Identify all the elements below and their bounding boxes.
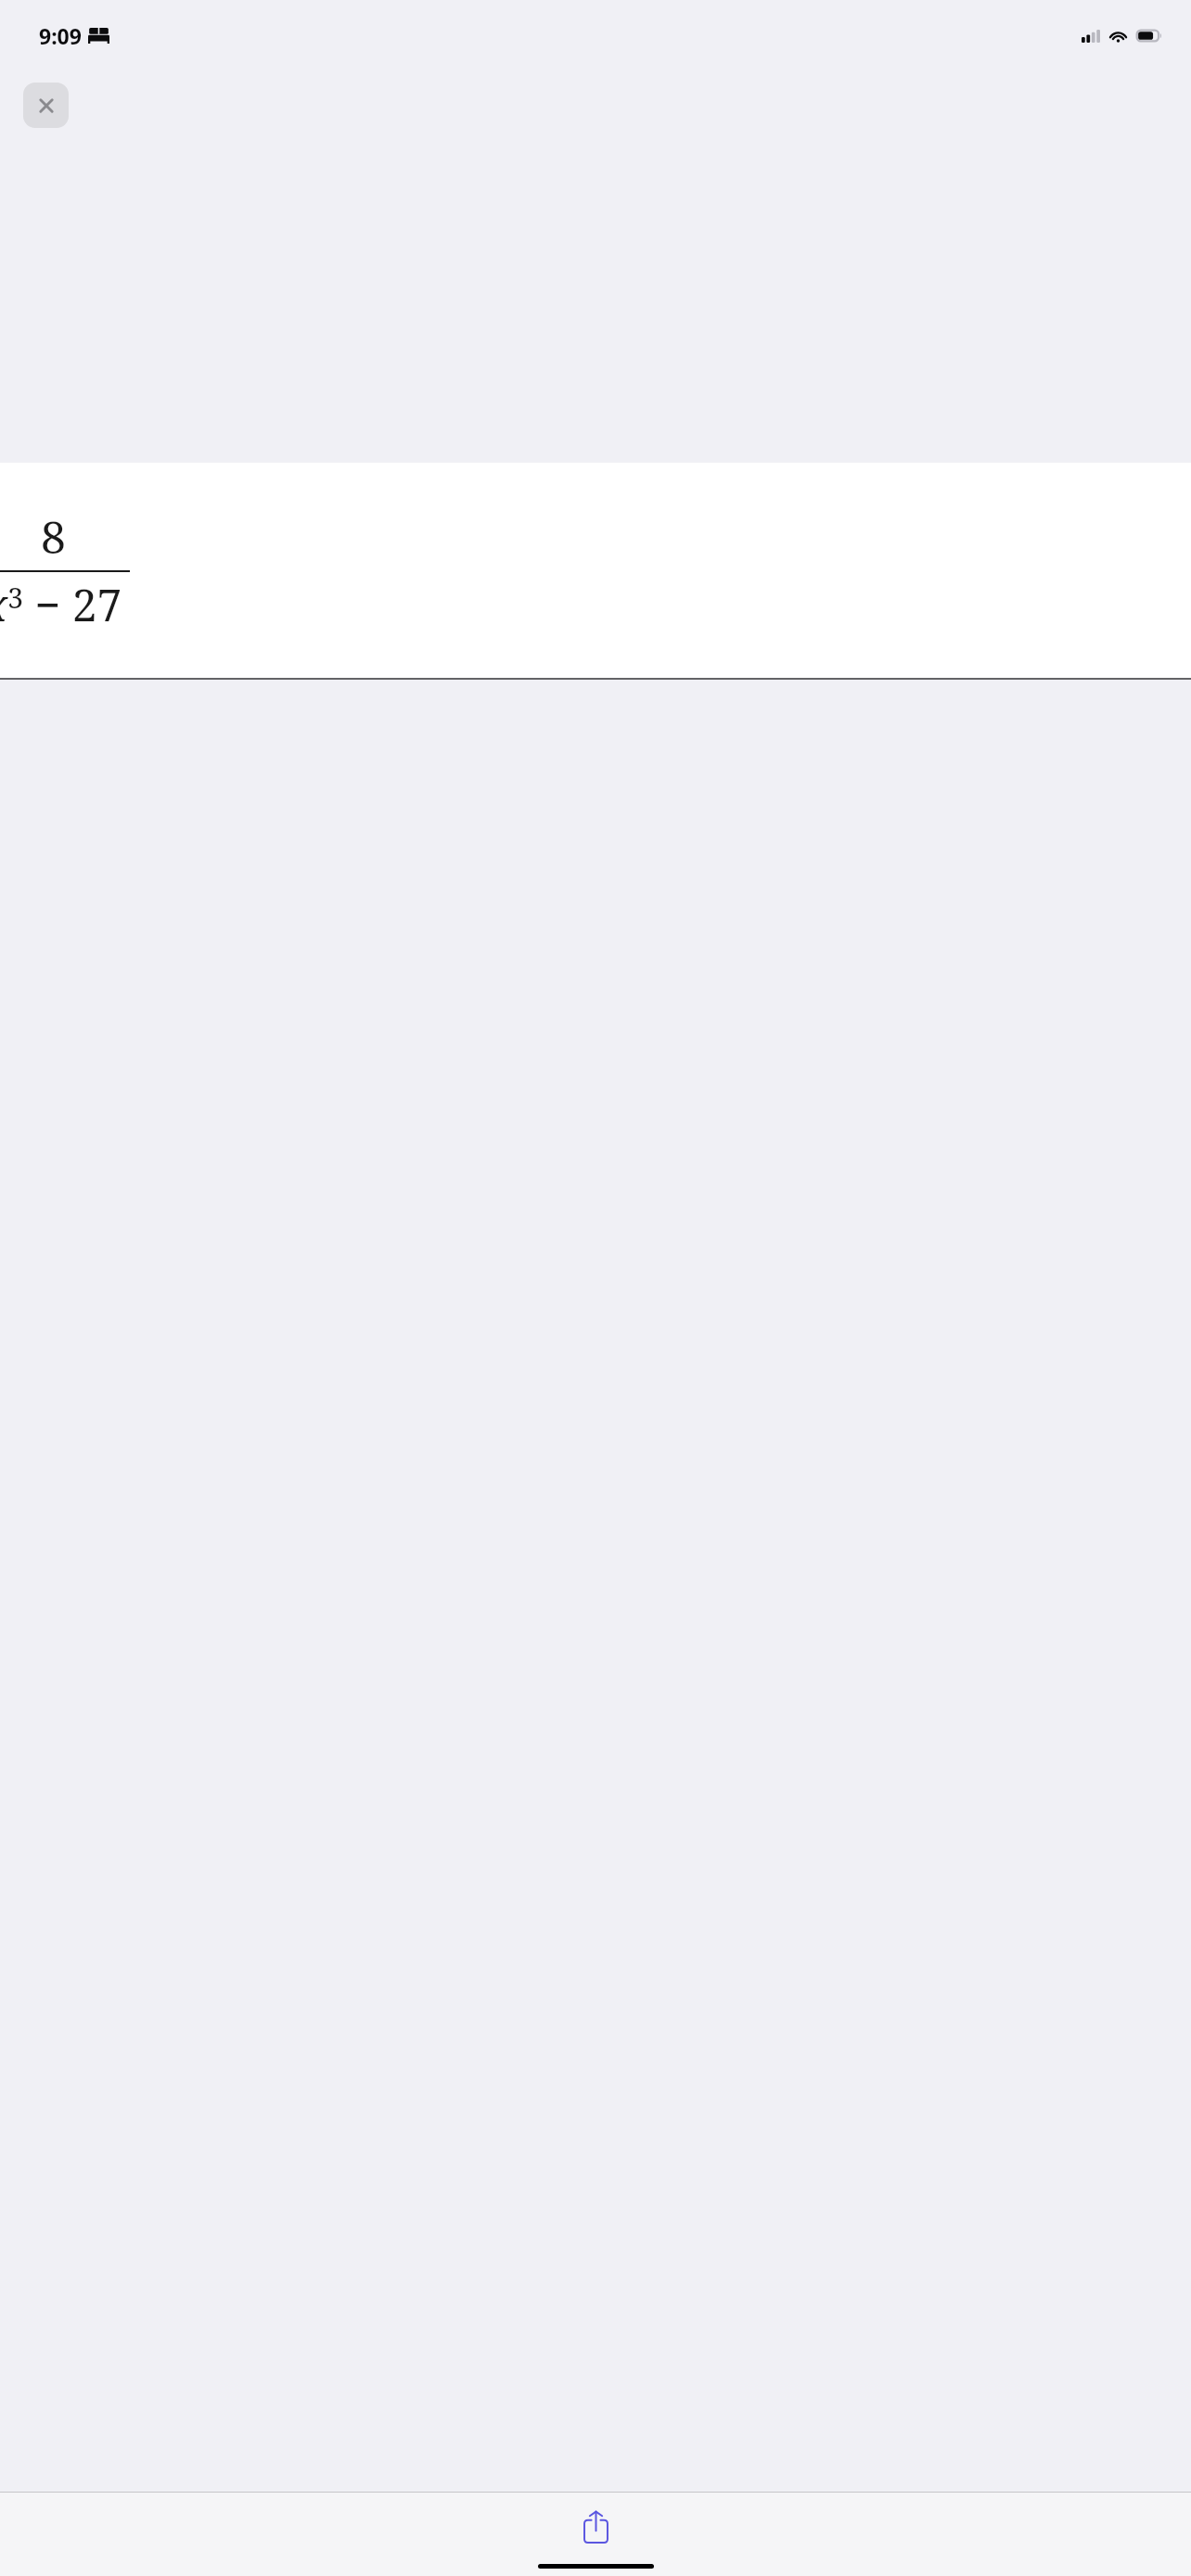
button[interactable]: Share <box>567 2498 624 2556</box>
staticText: 9:09 <box>39 21 82 50</box>
staticText: 8 <box>41 506 66 567</box>
button[interactable]: Close <box>23 83 69 128</box>
staticText: x3 − 27 <box>0 574 122 634</box>
button[interactable]: 8 <box>0 463 1191 680</box>
